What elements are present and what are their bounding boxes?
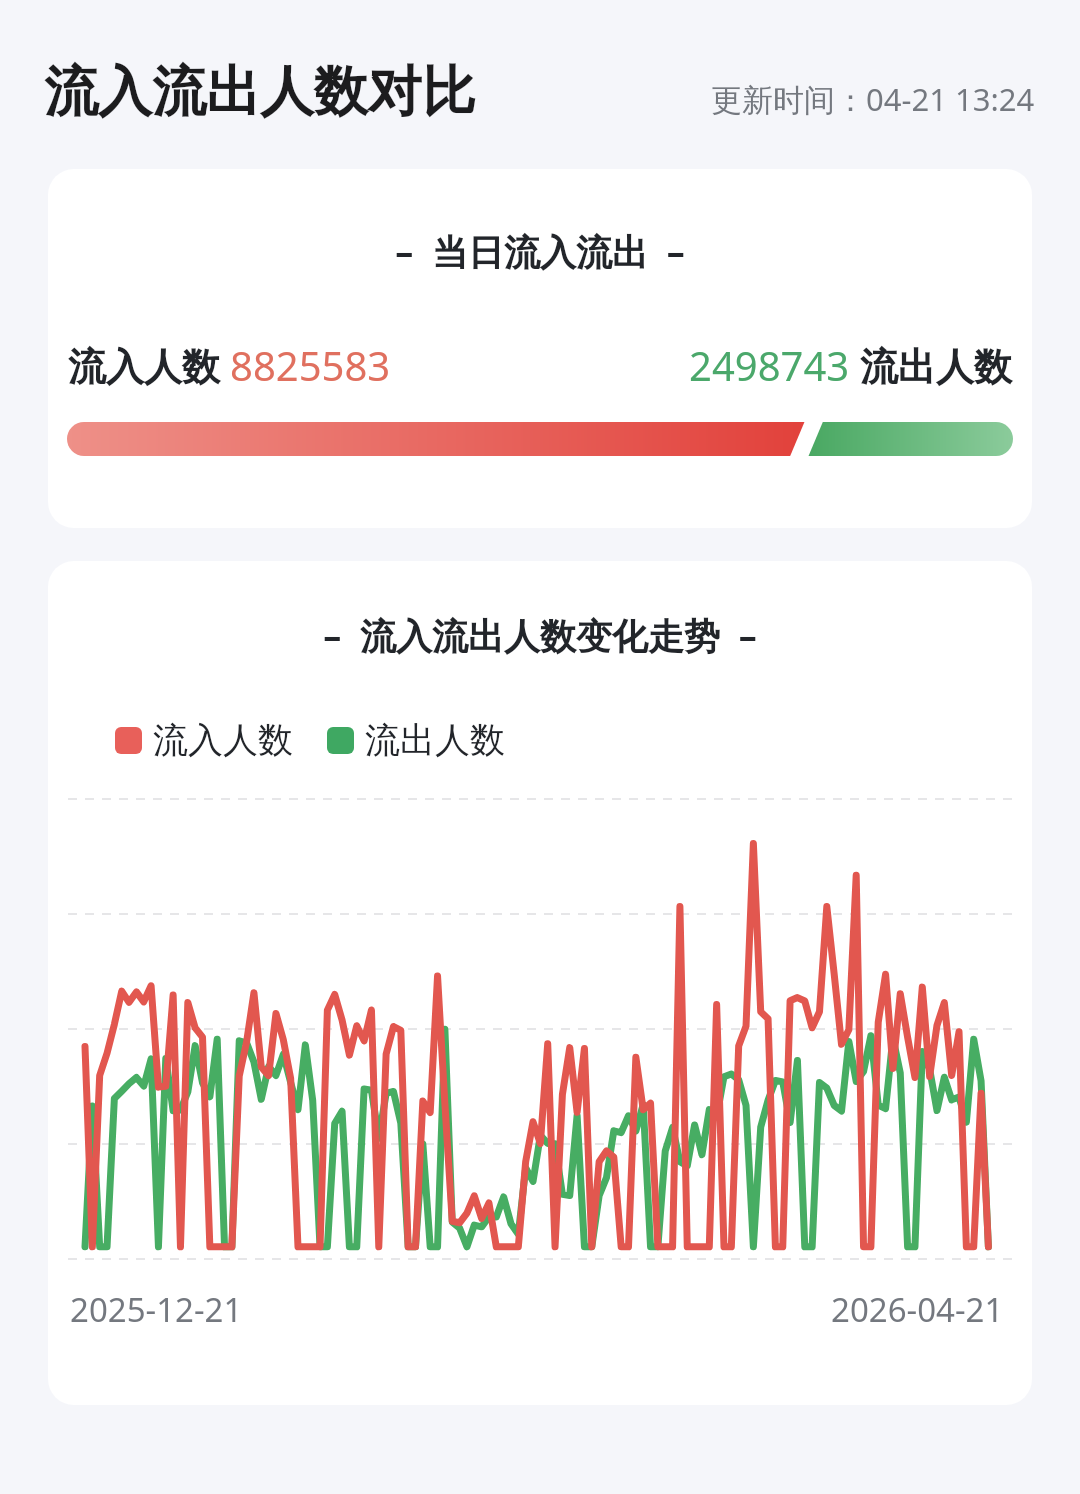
staticText: 流出人数 xyxy=(850,339,1012,391)
staticText: 流入人数 xyxy=(68,339,230,391)
staticText: 流入人数 xyxy=(153,718,293,762)
button[interactable]: – 当日流入流出 – xyxy=(48,169,1032,528)
staticText: 流入流出人数对比 xyxy=(44,58,476,126)
button[interactable]: – 流入流出人数变化走势 – xyxy=(48,561,1032,1405)
staticText: 更新时间：04-21 13:24 xyxy=(711,78,1035,120)
other: 流入流出人数变化走势折线图 xyxy=(68,799,1012,1259)
staticText: 8825583 xyxy=(230,338,391,392)
staticText: 2025-12-21 xyxy=(70,1287,243,1332)
staticText: 2026-04-21 xyxy=(831,1287,1004,1332)
staticText: 2498743 xyxy=(689,338,850,392)
staticText: 流出人数 xyxy=(365,718,505,762)
staticText: – 当日流入流出 – xyxy=(395,227,685,276)
staticText: – 流入流出人数变化走势 – xyxy=(48,611,1032,660)
